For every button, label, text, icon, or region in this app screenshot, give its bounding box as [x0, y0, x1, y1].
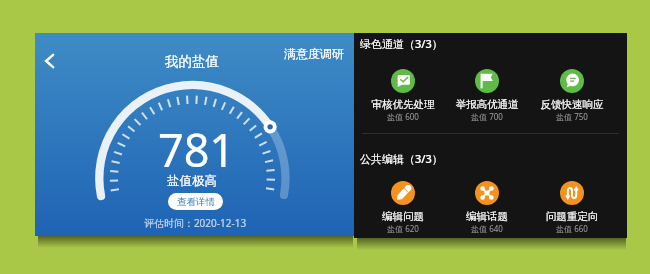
button[interactable]: 查看详情	[168, 193, 223, 210]
staticText: 盐值 640	[446, 223, 528, 234]
button[interactable]: 举报高优通道	[446, 69, 528, 123]
staticText: 查看详情	[177, 196, 215, 208]
staticText: 评估时间：2020-12-13	[135, 216, 255, 230]
button[interactable]: 审核优先处理	[362, 69, 444, 123]
button[interactable]: Back	[36, 47, 64, 75]
staticText: 绿色通道（3/3）	[360, 36, 443, 51]
button[interactable]: 编辑话题	[446, 181, 528, 235]
staticText: 公共编辑（3/3）	[360, 151, 443, 166]
staticText: 举报高优通道	[446, 98, 528, 111]
staticText: 盐值 600	[362, 111, 444, 122]
staticText: 反馈快速响应	[531, 98, 613, 111]
staticText: 盐值 700	[446, 111, 528, 122]
staticText: 盐值 620	[362, 223, 444, 234]
button[interactable]: 问题重定向	[531, 181, 613, 235]
staticText: 编辑问题	[362, 210, 444, 223]
staticText: 我的盐值	[152, 53, 232, 70]
staticText: 盐值极高	[152, 173, 232, 189]
staticText: 781	[141, 119, 252, 180]
staticText: 盐值 750	[531, 111, 613, 122]
button[interactable]: 反馈快速响应	[531, 69, 613, 123]
staticText: 审核优先处理	[362, 98, 444, 111]
button[interactable]: 编辑问题	[362, 181, 444, 235]
staticText: 问题重定向	[531, 210, 613, 223]
staticText: 编辑话题	[446, 210, 528, 223]
button[interactable]: 满意度调研	[274, 46, 344, 61]
staticText: 盐值 660	[531, 223, 613, 234]
